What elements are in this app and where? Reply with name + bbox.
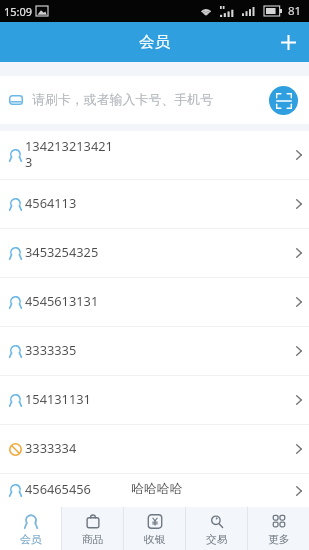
staticText: 3453254325 [25,243,114,260]
staticText: 3333335 [25,341,114,358]
button[interactable]: 456465456 [0,474,309,507]
button[interactable]: 1342132134213 [0,131,309,180]
staticText: 会员 [139,32,171,52]
button[interactable]: Add member [267,22,309,62]
button[interactable]: 商品 [62,507,123,550]
staticText: 请刷卡，或者输入卡号、手机号 [32,92,214,108]
staticText: 会员 [20,533,42,547]
staticText: 收银 [144,533,166,547]
staticText: 4545613131 [25,292,114,309]
staticText: 商品 [82,533,104,547]
staticText: 交易 [206,533,228,547]
staticText: 15:09 [4,4,33,19]
staticText: 3333334 [25,439,114,456]
button[interactable]: 3453254325 [0,229,309,278]
button[interactable]: 3333334 [0,425,309,474]
button[interactable]: 154131131 [0,376,309,425]
staticText: 更多 [268,533,290,547]
button[interactable]: 4545613131 [0,278,309,327]
button[interactable]: 更多 [248,507,309,550]
button[interactable]: 会员 [0,507,61,550]
button[interactable]: 4564113 [0,180,309,229]
staticText: 4564113 [25,194,114,211]
staticText: 154131131 [25,390,114,407]
staticText: 456465456 [25,480,114,497]
staticText: 81 [288,3,302,19]
staticText: 1342132134213 [25,137,114,170]
button[interactable]: Scan code [269,86,298,115]
button[interactable]: 交易 [186,507,247,550]
button[interactable]: 3333335 [0,327,309,376]
button[interactable]: 收银 [124,507,185,550]
staticText: 哈哈哈哈 [131,481,183,497]
